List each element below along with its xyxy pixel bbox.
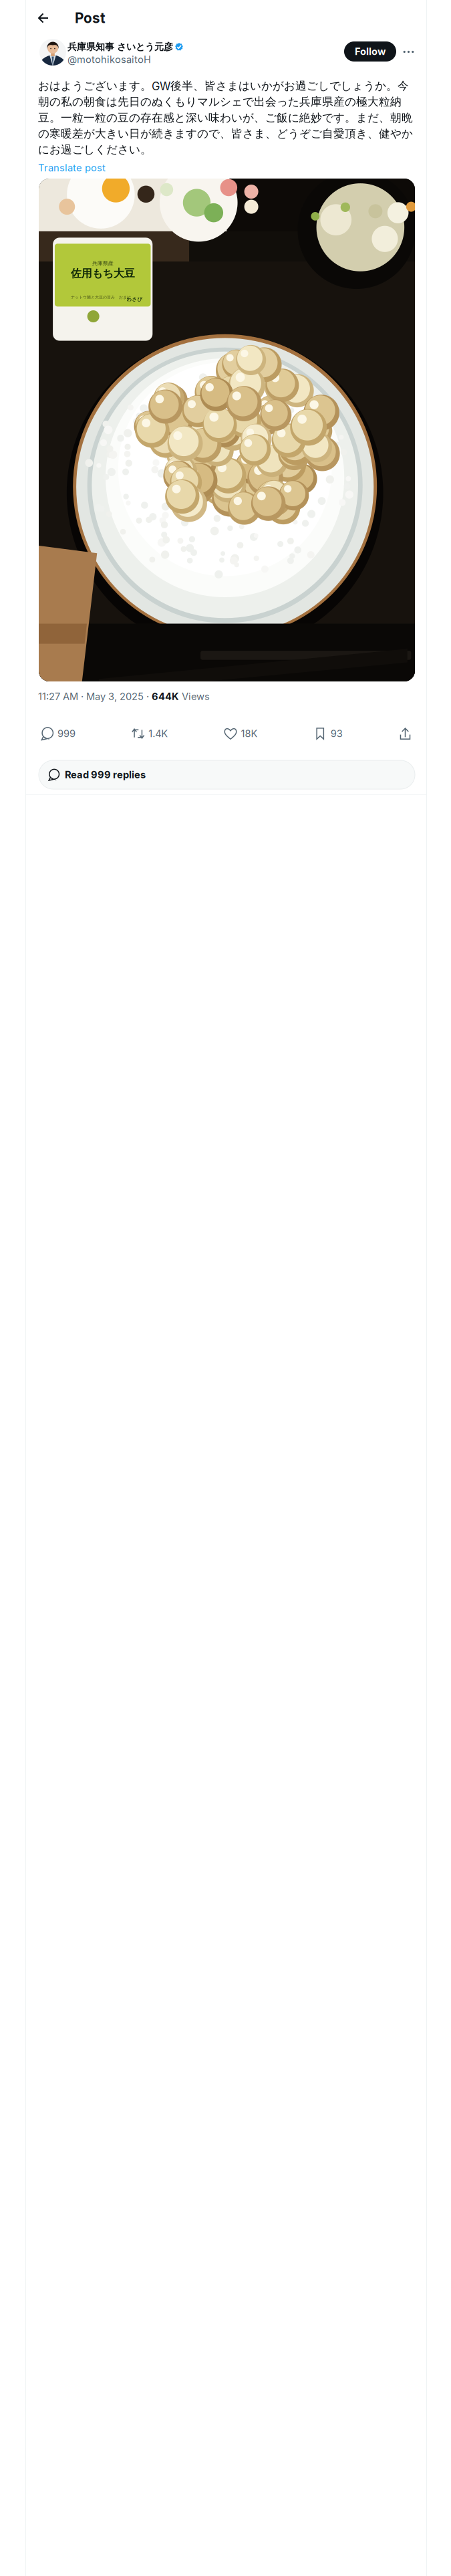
staticText: 644K [152,691,179,702]
button[interactable]: Like [224,724,258,744]
button[interactable]: Reply [41,724,76,744]
staticText: 1.4K [148,728,168,739]
staticText: 93 [331,728,343,739]
staticText: わさび [127,296,143,302]
button[interactable]: More [396,45,416,58]
staticText: Follow [355,46,386,57]
staticText: 18K [241,728,258,739]
staticText: 11:27 AM · May 3, 2025 · [38,691,152,702]
staticText: Translate post [38,162,106,174]
staticText: 兵庫県産 [92,260,113,267]
staticText: 佐用もち大豆 [71,267,135,280]
staticText: Views [179,691,210,702]
button[interactable]: Follow [344,41,396,62]
button[interactable]: Repost [132,724,168,744]
button[interactable]: Translate post [26,160,426,175]
staticText: おはようございます。GW後半、皆さまはいかがお過ごしでしょうか。今朝の私の朝食は… [38,79,413,157]
button[interactable]: Read 999 replies [39,760,415,789]
staticText: Read 999 replies [65,769,146,781]
button[interactable]: Back [26,3,75,33]
staticText: @motohikosaitoH [67,54,151,65]
button[interactable]: Bookmark [314,724,343,744]
button[interactable]: Share [399,724,412,744]
staticText: 兵庫県知事 さいとう元彦 [67,41,173,53]
staticText: 999 [57,728,76,739]
staticText: Post [75,10,106,26]
staticText: ナットウ菌と大豆の旨み おまけ [71,295,131,300]
